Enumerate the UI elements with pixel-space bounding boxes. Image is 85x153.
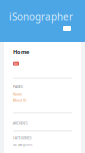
staticText: Go [14, 62, 18, 66]
staticText: About Us [13, 98, 26, 102]
staticText: iSonographer [9, 10, 73, 23]
staticText: CATEGORIES [13, 136, 32, 140]
staticText: PAGES [13, 85, 23, 89]
button[interactable]: Menu [61, 24, 73, 33]
staticText: Home [13, 48, 29, 56]
button[interactable]: iSonographer home [0, 0, 85, 23]
button[interactable]: Home [13, 92, 22, 96]
button[interactable]: Go [13, 62, 19, 66]
staticText: No categories [13, 143, 32, 147]
staticText: ARCHIVES [13, 121, 28, 125]
staticText: Home [13, 92, 22, 96]
button[interactable]: About Us [13, 98, 26, 102]
